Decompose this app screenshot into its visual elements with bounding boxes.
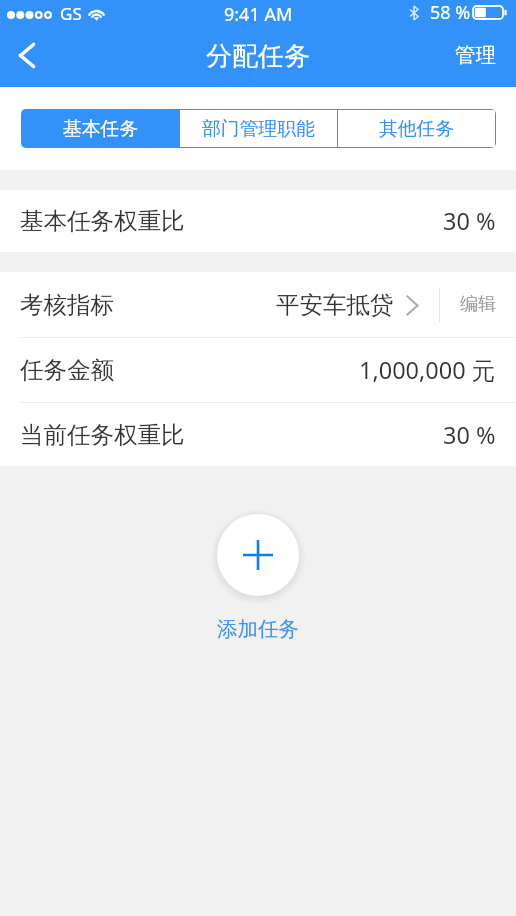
staticText: 58 % — [430, 0, 471, 25]
staticText: 部门管理职能 — [202, 117, 315, 141]
staticText: 当前任务权重比 — [20, 420, 185, 450]
button[interactable]: 添加任务 — [217, 514, 299, 596]
button[interactable]: 管理 — [435, 46, 516, 72]
staticText: 平安车抵贷 — [276, 290, 394, 320]
staticText: 9:41 AM — [224, 2, 293, 27]
button[interactable]: 平安车抵贷 — [276, 290, 418, 320]
button[interactable]: 基本任务 — [22, 110, 179, 147]
staticText: 1,000,000 元 — [359, 354, 496, 386]
staticText: 其他任务 — [379, 117, 455, 141]
staticText: GS — [60, 2, 82, 25]
staticText: 30 % — [443, 419, 496, 451]
staticText: 基本任务 — [63, 117, 139, 141]
staticText: 基本任务权重比 — [20, 206, 185, 236]
button[interactable]: 基本任务权重比 — [0, 190, 516, 252]
staticText: 添加任务 — [217, 616, 299, 642]
staticText: 30 % — [443, 205, 496, 237]
staticText: 编辑 — [460, 293, 496, 316]
staticText: 考核指标 — [20, 290, 114, 320]
button[interactable]: 部门管理职能 — [180, 110, 337, 147]
button[interactable]: 编辑 — [440, 293, 496, 316]
staticText: 管理 — [455, 42, 496, 68]
staticText: 分配任务 — [206, 40, 310, 73]
button[interactable]: 其他任务 — [338, 110, 495, 147]
staticText: 任务金额 — [20, 355, 114, 385]
button[interactable]: 当前任务权重比 — [0, 403, 516, 466]
button[interactable]: 任务金额 — [0, 338, 516, 402]
button[interactable]: 返回 — [0, 32, 54, 86]
